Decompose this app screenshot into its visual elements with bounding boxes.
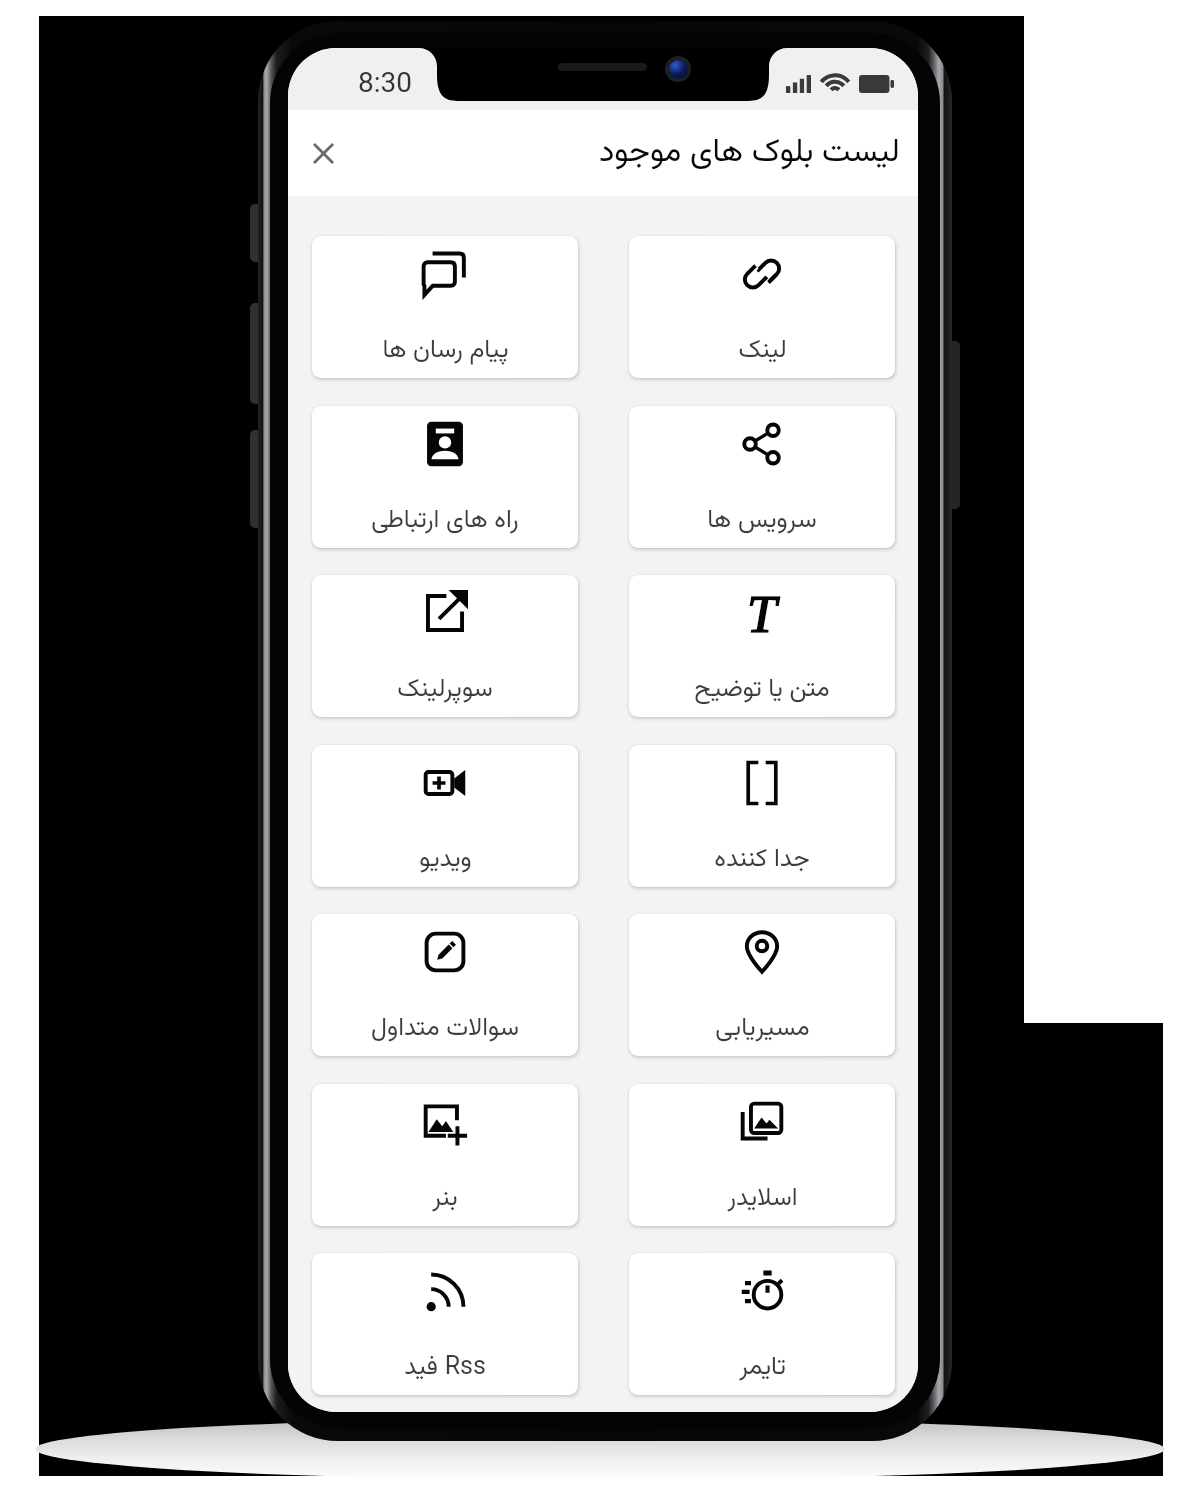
staticText: 8:30 [358, 66, 412, 99]
button[interactable]: فید Rss [312, 1253, 578, 1395]
button[interactable]: جدا کننده [629, 745, 895, 887]
staticText: متن یا توضیح [694, 670, 830, 709]
staticText: بنر [432, 1179, 458, 1218]
button[interactable]: لینک [629, 236, 895, 378]
button[interactable]: ویدیو [312, 745, 578, 887]
button[interactable]: راه های ارتباطی [312, 406, 578, 548]
staticText: مسیریابی [715, 1009, 810, 1048]
staticText: سوالات متداول [371, 1009, 519, 1048]
button[interactable]: پیام رسان ها [312, 236, 578, 378]
staticText: پیام رسان ها [382, 331, 509, 370]
button[interactable]: سوپرلینک [312, 575, 578, 717]
staticText: T [747, 585, 777, 644]
button[interactable]: سوالات متداول [312, 914, 578, 1056]
staticText: تایمر [739, 1348, 786, 1387]
button[interactable]: اسلایدر [629, 1084, 895, 1226]
staticText: جدا کننده [714, 840, 810, 879]
button[interactable]: سرویس ها [629, 406, 895, 548]
button[interactable]: مسیریابی [629, 914, 895, 1056]
staticText: لیست بلوک های موجود [599, 128, 900, 178]
staticText: راه های ارتباطی [371, 501, 519, 540]
staticText: سوپرلینک [397, 670, 493, 709]
button[interactable]: Close [296, 126, 350, 180]
staticText: ویدیو [419, 840, 472, 879]
staticText: اسلایدر [727, 1179, 798, 1218]
staticText: فید Rss [404, 1348, 486, 1387]
button[interactable]: T [629, 575, 895, 717]
staticText: سرویس ها [707, 501, 817, 540]
staticText: لینک [738, 331, 787, 370]
button[interactable]: بنر [312, 1084, 578, 1226]
button[interactable]: تایمر [629, 1253, 895, 1395]
